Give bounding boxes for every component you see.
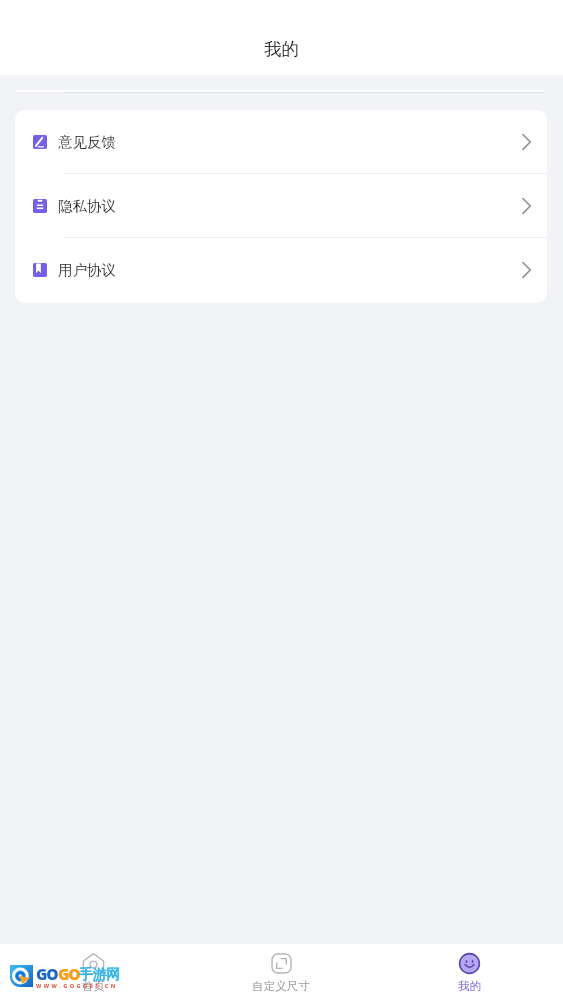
staticText: 意见反馈 bbox=[58, 133, 116, 151]
button[interactable]: 首页 bbox=[0, 944, 187, 1002]
staticText: W W W . G O G O 9 1 . C N bbox=[36, 982, 116, 989]
staticText: GO bbox=[58, 963, 80, 984]
other: 打开意见反馈 bbox=[522, 134, 531, 150]
button[interactable]: 自定义尺寸 bbox=[187, 944, 375, 1002]
button[interactable]: 隐私协议 bbox=[15, 174, 547, 238]
other: 打开用户协议 bbox=[522, 262, 531, 278]
button[interactable]: 用户协议 bbox=[15, 238, 547, 302]
staticText: 用户协议 bbox=[58, 261, 116, 279]
other: 首页 bbox=[83, 953, 104, 974]
staticText: 隐私协议 bbox=[58, 197, 116, 215]
staticText: 手游网 bbox=[79, 966, 120, 984]
staticText: 我的 bbox=[264, 38, 299, 60]
staticText: 我的 bbox=[458, 979, 481, 993]
button[interactable]: 我的 bbox=[375, 944, 563, 1002]
other: 打开隐私协议 bbox=[522, 198, 531, 214]
other: 自定义尺寸 bbox=[271, 953, 292, 974]
button[interactable]: 意见反馈 bbox=[15, 110, 547, 174]
other: 我的 bbox=[459, 953, 480, 974]
staticText: 自定义尺寸 bbox=[252, 979, 310, 993]
staticText: GO bbox=[36, 963, 58, 984]
staticText: 首页 bbox=[82, 979, 105, 993]
